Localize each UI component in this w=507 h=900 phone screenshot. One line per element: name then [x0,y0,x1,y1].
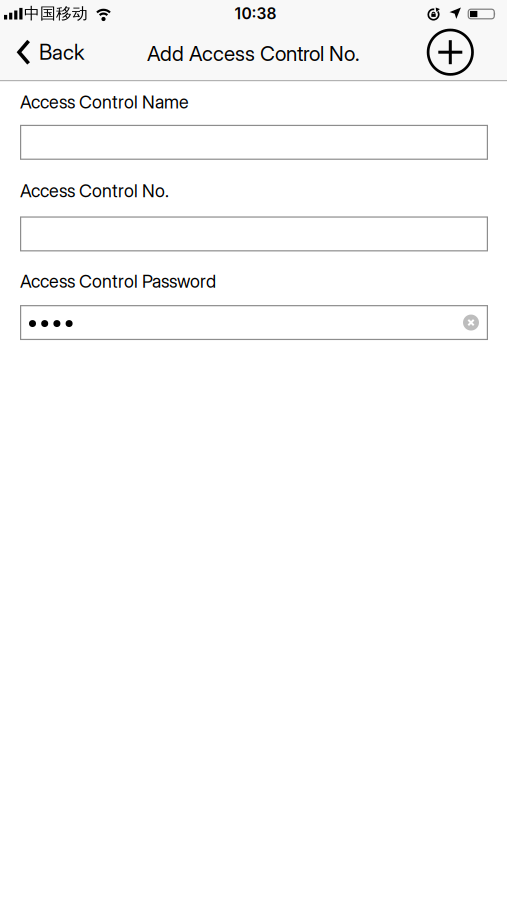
button[interactable]: Add [427,28,507,76]
staticText: 中国移动 [24,4,88,23]
staticText: Access Control No. [20,180,169,201]
button[interactable]: Back [0,39,85,65]
staticText: Back [39,40,85,65]
staticText: Add Access Control No. [147,41,360,66]
button[interactable]: Clear text [463,315,488,331]
staticText: Access Control Name [20,91,189,113]
staticText: 10:38 [234,4,276,23]
button[interactable]: Access Control Password [20,305,488,340]
button[interactable]: Access Control Name [20,125,488,160]
button[interactable]: Access Control No. [20,216,488,251]
staticText: Access Control Password [20,270,216,292]
